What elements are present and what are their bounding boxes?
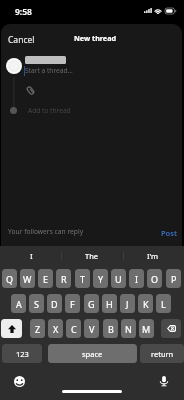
button[interactable]: Add to thread bbox=[28, 104, 71, 117]
button[interactable]: U bbox=[111, 269, 126, 288]
staticText: New thread bbox=[74, 33, 117, 43]
staticText: Y bbox=[98, 273, 104, 285]
button[interactable]: I'm bbox=[133, 247, 173, 265]
staticText: F bbox=[70, 298, 75, 310]
staticText: M bbox=[142, 323, 151, 335]
button[interactable]: Backspace bbox=[161, 319, 181, 338]
staticText: Start a thread... bbox=[25, 66, 73, 75]
button[interactable]: I bbox=[11, 247, 51, 265]
staticText: P bbox=[171, 273, 177, 285]
staticText: X bbox=[53, 323, 59, 335]
staticText: W bbox=[23, 273, 32, 285]
staticText: U bbox=[115, 273, 122, 285]
staticText: I bbox=[30, 251, 33, 261]
button[interactable]: Emoji keyboard bbox=[14, 376, 25, 387]
button[interactable]: Attach media bbox=[25, 85, 36, 96]
staticText: space bbox=[82, 349, 103, 359]
staticText: L bbox=[161, 298, 166, 310]
staticText: V bbox=[89, 323, 95, 335]
button[interactable]: R bbox=[56, 269, 71, 288]
staticText: Post bbox=[161, 228, 177, 238]
button[interactable]: The bbox=[72, 247, 112, 265]
staticText: C bbox=[71, 323, 77, 335]
staticText: B bbox=[108, 323, 114, 335]
button[interactable]: 123 bbox=[2, 344, 42, 363]
staticText: J bbox=[126, 298, 129, 310]
button[interactable]: L bbox=[156, 294, 171, 313]
button[interactable]: G bbox=[84, 294, 99, 313]
staticText: T bbox=[80, 273, 86, 285]
staticText: R bbox=[61, 273, 67, 285]
button[interactable]: Y bbox=[93, 269, 108, 288]
staticText: S bbox=[34, 298, 39, 310]
button[interactable]: O bbox=[147, 269, 162, 288]
button[interactable]: Your followers can reply bbox=[4, 224, 88, 239]
staticText: Your followers can reply bbox=[8, 227, 84, 236]
button[interactable]: E bbox=[38, 269, 53, 288]
staticText: 123 bbox=[16, 349, 29, 359]
staticText: I'm bbox=[147, 251, 159, 261]
button[interactable]: H bbox=[102, 294, 117, 313]
button[interactable]: J bbox=[120, 294, 135, 313]
button[interactable]: M bbox=[139, 319, 154, 338]
button[interactable]: F bbox=[65, 294, 80, 313]
button[interactable]: C bbox=[66, 319, 81, 338]
button[interactable]: Profile photo bbox=[6, 58, 22, 74]
button[interactable]: N bbox=[121, 319, 136, 338]
button[interactable]: X bbox=[48, 319, 63, 338]
button[interactable]: T bbox=[75, 269, 90, 288]
button[interactable]: Shift bbox=[1, 319, 22, 338]
staticText: N bbox=[125, 323, 132, 335]
button[interactable]: A bbox=[11, 294, 26, 313]
staticText: Z bbox=[35, 323, 41, 335]
button[interactable]: S bbox=[29, 294, 44, 313]
staticText: 9:58 bbox=[15, 6, 32, 18]
staticText: K bbox=[143, 298, 149, 310]
staticText: Q bbox=[6, 273, 14, 285]
button[interactable]: Q bbox=[2, 269, 17, 288]
button[interactable]: V bbox=[84, 319, 99, 338]
staticText: A bbox=[16, 298, 22, 310]
staticText: D bbox=[51, 298, 58, 310]
button[interactable]: Z bbox=[30, 319, 45, 338]
button[interactable]: Dictation bbox=[158, 375, 170, 387]
staticText: E bbox=[43, 273, 49, 285]
button[interactable]: space bbox=[48, 344, 137, 363]
staticText: Add to thread bbox=[28, 106, 71, 115]
staticText: return bbox=[151, 349, 174, 359]
button[interactable]: Cancel bbox=[0, 28, 43, 48]
button[interactable]: B bbox=[103, 319, 118, 338]
staticText: G bbox=[88, 298, 95, 310]
button[interactable]: return bbox=[140, 344, 184, 363]
staticText: Cancel bbox=[8, 34, 35, 46]
button[interactable]: P bbox=[166, 269, 181, 288]
button[interactable]: K bbox=[138, 294, 153, 313]
button[interactable]: W bbox=[20, 269, 35, 288]
staticText: The bbox=[85, 251, 99, 261]
staticText: H bbox=[106, 298, 113, 310]
button[interactable]: I bbox=[129, 269, 144, 288]
button[interactable]: Post bbox=[157, 225, 181, 241]
staticText: O bbox=[151, 273, 159, 285]
button[interactable]: D bbox=[47, 294, 62, 313]
staticText: I bbox=[135, 273, 139, 285]
